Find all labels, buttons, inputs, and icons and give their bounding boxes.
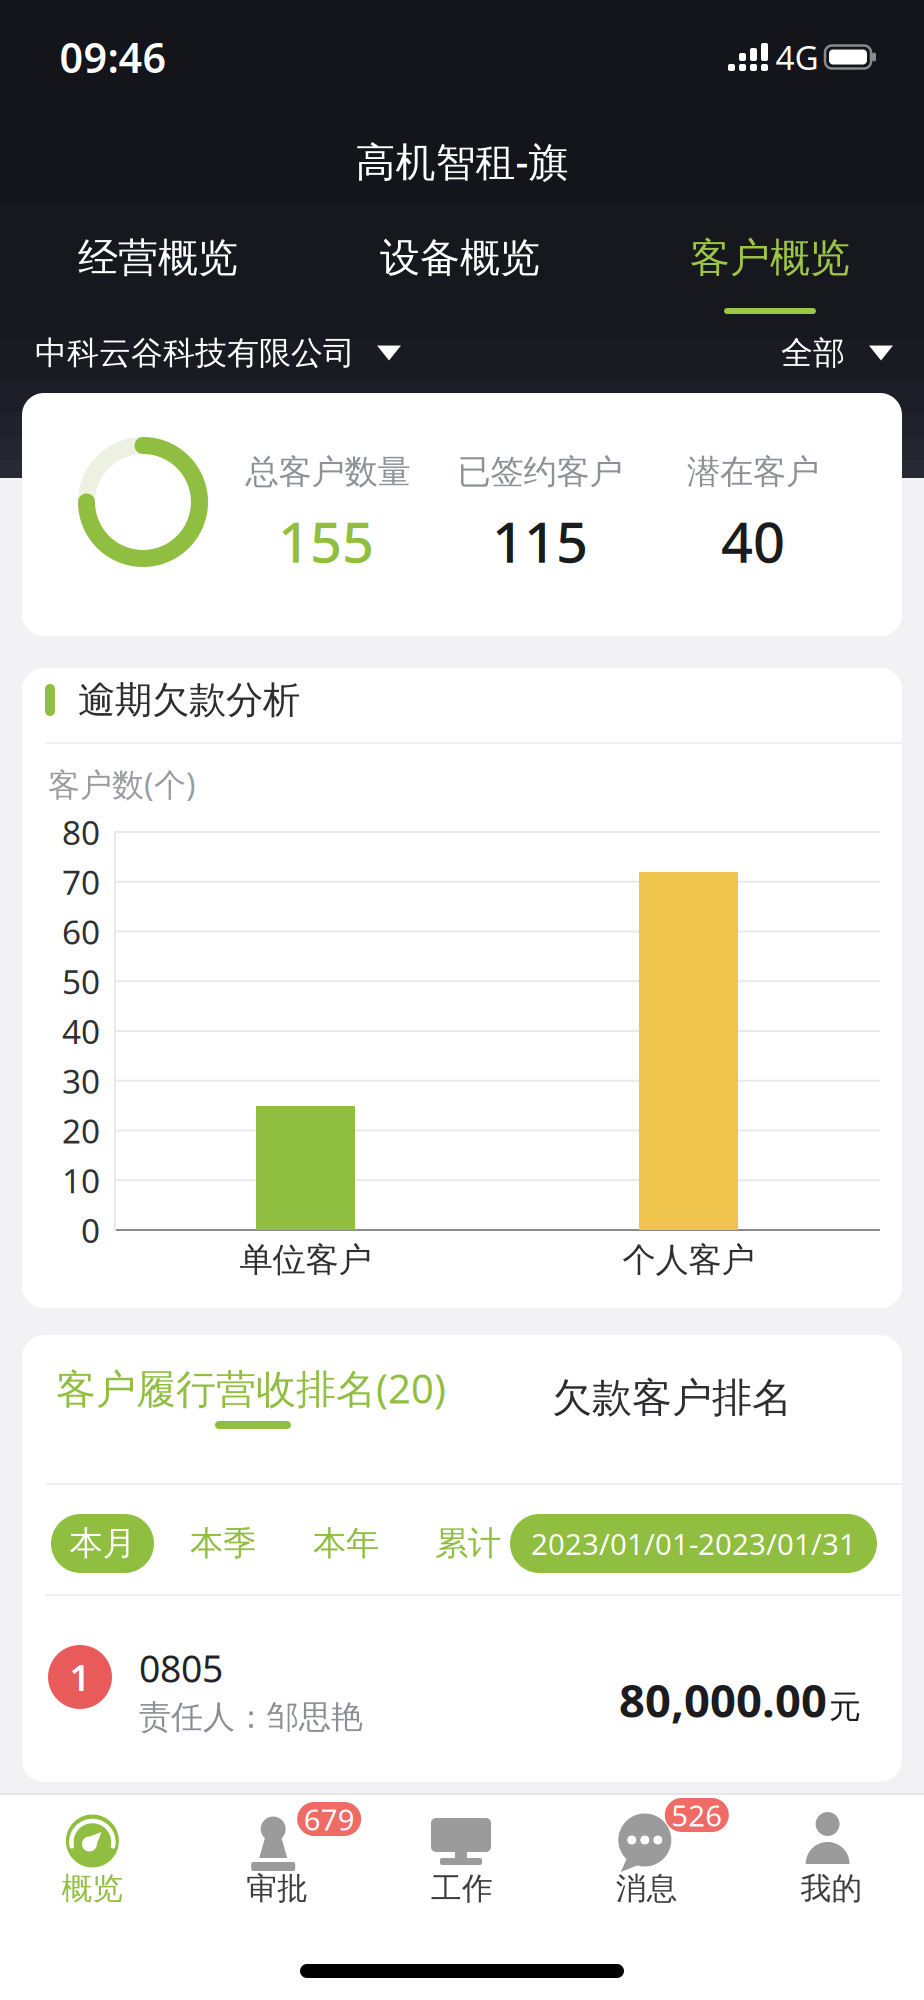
staticText: 20 [62, 1108, 100, 1153]
staticText: 80 [62, 810, 100, 854]
staticText: 欠款客户排名 [552, 1373, 792, 1422]
staticText: 单位客户 [239, 1239, 371, 1280]
staticText: 工作 [431, 1870, 493, 1907]
staticText: 客户概览 [690, 233, 850, 282]
staticText: 我的 [801, 1870, 863, 1907]
staticText: 经营概览 [78, 233, 238, 282]
staticText: 审批 [246, 1870, 308, 1907]
staticText: 总客户数量 [245, 451, 410, 492]
staticText: 679 [304, 1799, 355, 1838]
staticText: 2023/01/01-2023/01/31 [531, 1524, 856, 1563]
staticText: 40 [62, 1009, 100, 1053]
button[interactable]: 中科云谷科技有限公司 [35, 322, 465, 384]
staticText: 本年 [313, 1523, 379, 1564]
staticText: 潜在客户 [687, 451, 819, 492]
staticText: 155 [278, 504, 374, 578]
staticText: 概览 [61, 1870, 123, 1907]
staticText: 115 [492, 504, 588, 578]
staticText: 客户数(个) [48, 763, 196, 805]
button[interactable]: 概览 [0, 1796, 184, 1916]
button[interactable]: 工作 [370, 1796, 554, 1916]
staticText: 个人客户 [622, 1239, 754, 1280]
staticText: 4G [775, 35, 818, 79]
button[interactable]: 1 [22, 1595, 902, 1781]
staticText: 10 [62, 1158, 100, 1202]
button[interactable]: 客户履行营收排名(20) [51, 1356, 451, 1446]
button[interactable]: 2023/01/01-2023/01/31 [510, 1514, 877, 1573]
staticText: 50 [62, 959, 100, 1003]
button[interactable]: 全部 [673, 322, 893, 384]
staticText: 逾期欠款分析 [78, 677, 300, 723]
staticText: 0 [81, 1208, 100, 1252]
button[interactable]: 消息 [555, 1796, 739, 1916]
staticText: 本季 [190, 1523, 256, 1564]
staticText: 已签约客户 [457, 451, 622, 492]
staticText: 中科云谷科技有限公司 [35, 333, 355, 373]
staticText: 60 [62, 909, 100, 954]
staticText: 40 [721, 504, 785, 578]
staticText: 1 [69, 1653, 90, 1701]
staticText: 客户履行营收排名(20) [56, 1361, 446, 1414]
staticText: 元 [829, 1687, 861, 1727]
staticText: 30 [62, 1059, 100, 1103]
button[interactable]: 我的 [740, 1796, 924, 1916]
staticText: 0805 [139, 1643, 223, 1693]
button[interactable]: 设备概览 [340, 218, 580, 298]
button[interactable]: 本月 [51, 1514, 154, 1573]
button[interactable]: 欠款客户排名 [522, 1368, 822, 1428]
button[interactable]: 累计 [418, 1514, 518, 1573]
staticText: 责任人：邹思艳 [139, 1697, 363, 1737]
button[interactable]: 客户概览 [650, 216, 890, 316]
staticText: 09:46 [59, 30, 166, 84]
staticText: 70 [62, 860, 100, 904]
staticText: 526 [671, 1795, 722, 1834]
staticText: 全部 [781, 333, 845, 373]
staticText: 本月 [69, 1523, 135, 1564]
staticText: 累计 [435, 1523, 501, 1564]
button[interactable]: 经营概览 [38, 218, 278, 298]
staticText: 高机智租-旗 [355, 134, 568, 187]
staticText: 设备概览 [380, 233, 540, 282]
button[interactable]: 本年 [296, 1514, 396, 1573]
staticText: 消息 [616, 1870, 678, 1907]
button[interactable]: 本季 [173, 1514, 273, 1573]
button[interactable]: 审批 [185, 1796, 369, 1916]
staticText: 80,000.00 [619, 1670, 827, 1730]
